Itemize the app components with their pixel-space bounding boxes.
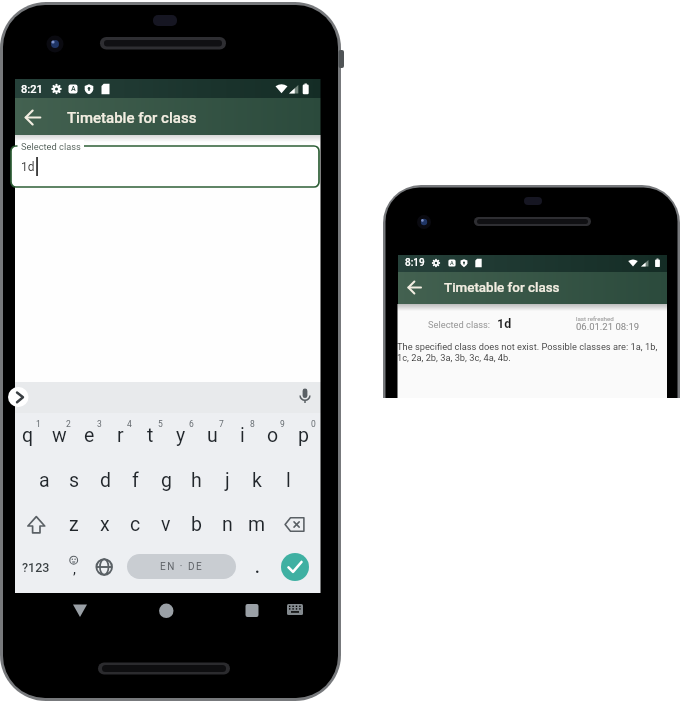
button[interactable]: l — [273, 459, 303, 501]
staticText: b — [191, 513, 202, 536]
staticText: 06.01.21 08:19 — [576, 321, 640, 332]
button[interactable]: a — [29, 459, 59, 501]
staticText: m — [248, 513, 266, 536]
button[interactable]: q — [13, 414, 43, 456]
button[interactable]: m — [242, 503, 272, 545]
staticText: t — [147, 424, 154, 447]
staticText: 7 — [219, 419, 224, 429]
button[interactable]: h — [181, 459, 211, 501]
staticText: w — [52, 424, 67, 447]
staticText: A — [450, 260, 454, 266]
button[interactable]: v — [151, 503, 181, 545]
button[interactable]: 1d — [21, 150, 61, 184]
staticText: p — [298, 424, 309, 447]
button[interactable]: y — [166, 414, 196, 456]
staticText: 1d — [497, 316, 512, 331]
staticText: d — [100, 469, 111, 492]
staticText: 8 — [250, 419, 255, 429]
staticText: , — [73, 560, 76, 578]
button[interactable]: . — [247, 555, 267, 579]
staticText: The specified class does not exist. Poss… — [397, 341, 658, 352]
button[interactable]: Timetable for class — [67, 98, 327, 138]
button[interactable]: g — [151, 459, 181, 501]
staticText: Selected class: — [428, 319, 491, 330]
staticText: A — [71, 85, 76, 93]
button[interactable]: d — [90, 459, 120, 501]
button[interactable]: j — [212, 459, 242, 501]
button[interactable]: u — [197, 414, 227, 456]
staticText: last refreshed — [576, 315, 614, 322]
staticText: 8:19 — [405, 257, 425, 269]
staticText: 8:21 — [21, 83, 43, 96]
button[interactable]: z — [59, 503, 89, 545]
button[interactable]: p — [288, 414, 318, 456]
staticText: 2 — [66, 419, 71, 429]
button[interactable]: k — [242, 459, 272, 501]
button[interactable]: s — [59, 459, 89, 501]
staticText: h — [191, 469, 202, 492]
button[interactable]: w — [44, 414, 74, 456]
button[interactable]: n — [212, 503, 242, 545]
staticText: Selected class — [21, 141, 81, 152]
staticText: Timetable for class — [67, 109, 197, 127]
staticText: 3 — [97, 419, 102, 429]
button[interactable]: c — [120, 503, 150, 545]
button[interactable]: , — [64, 557, 84, 581]
staticText: v — [161, 513, 171, 536]
staticText: q — [22, 424, 34, 447]
staticText: EN · DE — [160, 561, 204, 573]
staticText: 9 — [280, 419, 285, 429]
staticText: j — [225, 469, 230, 492]
button[interactable]: e — [74, 414, 104, 456]
staticText: Timetable for class — [444, 280, 560, 296]
staticText: s — [69, 469, 80, 492]
staticText: a — [39, 469, 50, 492]
staticText: r — [117, 424, 124, 447]
staticText: y — [176, 424, 186, 447]
button[interactable]: o — [258, 414, 288, 456]
button[interactable]: x — [90, 503, 120, 545]
staticText: f — [132, 469, 139, 492]
staticText: n — [222, 513, 233, 536]
staticText: 4 — [127, 419, 132, 429]
staticText: . — [255, 558, 260, 577]
staticText: 6 — [189, 419, 194, 429]
staticText: e — [84, 424, 95, 447]
staticText: ?123 — [22, 560, 50, 575]
staticText: 1d — [21, 160, 35, 174]
staticText: 5 — [158, 419, 163, 429]
staticText: l — [286, 469, 291, 492]
staticText: x — [100, 513, 110, 536]
staticText: g — [161, 469, 172, 492]
staticText: 1c, 2a, 2b, 3a, 3b, 3c, 4a, 4b. — [397, 352, 511, 363]
staticText: z — [69, 513, 79, 536]
button[interactable]: t — [135, 414, 165, 456]
button[interactable]: ?123 — [16, 552, 56, 582]
button[interactable]: f — [120, 459, 150, 501]
button[interactable]: r — [105, 414, 135, 456]
button[interactable]: b — [181, 503, 211, 545]
button[interactable]: i — [227, 414, 257, 456]
staticText: u — [207, 424, 218, 447]
staticText: i — [240, 424, 245, 447]
button[interactable]: Timetable for class — [444, 270, 664, 306]
button[interactable]: EN · DE — [127, 554, 236, 579]
staticText: c — [130, 513, 141, 536]
staticText: o — [267, 424, 279, 447]
staticText: 0 — [311, 419, 316, 429]
staticText: k — [252, 469, 262, 492]
staticText: 1 — [36, 419, 41, 429]
